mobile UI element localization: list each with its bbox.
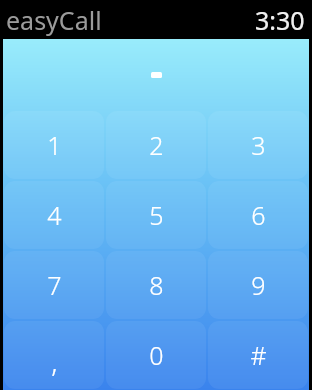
button[interactable]: 4 [4,181,104,249]
staticText: , [51,342,58,380]
button[interactable]: 9 [208,251,308,319]
staticText: # [250,338,267,372]
staticText: 3 [251,128,266,162]
staticText: 1 [47,128,62,162]
other: Number display [151,72,162,78]
button[interactable]: 2 [106,111,206,179]
staticText: 8 [149,268,164,302]
button[interactable]: # [208,321,308,389]
button[interactable]: , [4,321,104,389]
button[interactable]: 8 [106,251,206,319]
button[interactable]: 6 [208,181,308,249]
staticText: 9 [251,268,266,302]
staticText: easyCall [6,3,102,37]
staticText: 0 [149,338,164,372]
staticText: 4 [47,198,62,232]
staticText: 5 [149,198,164,232]
button[interactable]: 3 [208,111,308,179]
button[interactable]: 5 [106,181,206,249]
button[interactable]: 7 [4,251,104,319]
staticText: 2 [149,128,164,162]
staticText: 7 [47,268,62,302]
staticText: 3:30 [255,3,305,37]
button[interactable]: 1 [4,111,104,179]
staticText: 6 [251,198,266,232]
button[interactable]: 0 [106,321,206,389]
